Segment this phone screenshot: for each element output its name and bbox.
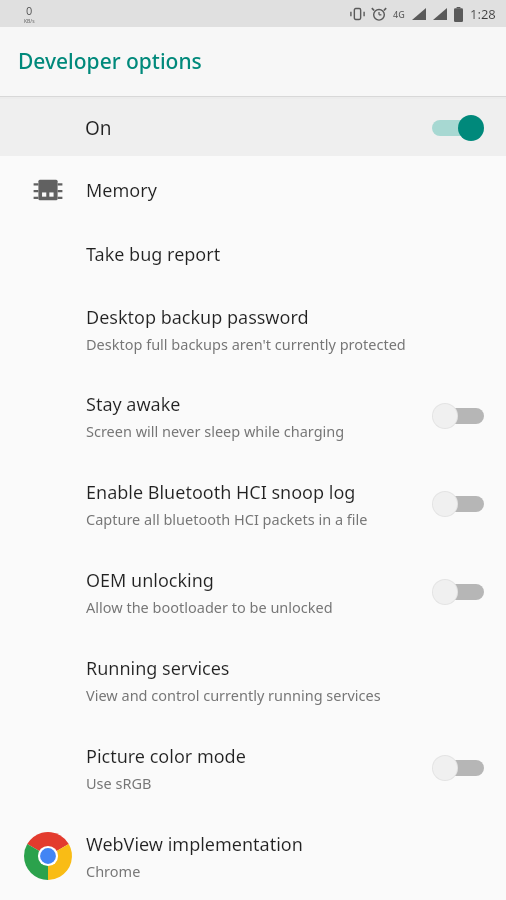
- button[interactable]: Running services: [0, 636, 506, 724]
- button[interactable]: Stay awake: [0, 372, 506, 460]
- staticText: Memory: [86, 178, 157, 203]
- staticText: Screen will never sleep while charging: [86, 421, 345, 441]
- button[interactable]: Desktop backup password: [0, 286, 506, 372]
- staticText: Enable Bluetooth HCI snoop log: [86, 480, 356, 505]
- staticText: Stay awake: [86, 392, 181, 417]
- button[interactable]: OEM unlocking: [0, 548, 506, 636]
- staticText: View and control currently running servi…: [86, 685, 381, 705]
- staticText: OEM unlocking: [86, 568, 214, 593]
- staticText: KB/s: [24, 18, 35, 25]
- staticText: Running services: [86, 656, 230, 681]
- button[interactable]: Picture color mode: [0, 724, 506, 812]
- staticText: Picture color mode: [86, 744, 246, 769]
- staticText: Take bug report: [86, 242, 221, 267]
- staticText: 1:28: [470, 5, 496, 23]
- button[interactable]: On: [0, 99, 506, 156]
- staticText: 0: [26, 3, 33, 18]
- staticText: Desktop backup password: [86, 305, 309, 330]
- staticText: Capture all bluetooth HCI packets in a f…: [86, 509, 368, 529]
- staticText: WebView implementation: [86, 832, 303, 857]
- staticText: Chrome: [86, 861, 141, 881]
- button[interactable]: Enable Bluetooth HCI snoop log: [0, 460, 506, 548]
- button[interactable]: Take bug report: [0, 222, 506, 286]
- staticText: 4G: [393, 8, 405, 20]
- button[interactable]: WebView implementation: [0, 812, 506, 900]
- staticText: Allow the bootloader to be unlocked: [86, 597, 333, 617]
- staticText: On: [85, 115, 112, 141]
- staticText: Developer options: [18, 47, 202, 76]
- staticText: Desktop full backups aren't currently pr…: [86, 334, 406, 354]
- staticText: Use sRGB: [86, 773, 152, 793]
- button[interactable]: Memory: [0, 158, 506, 222]
